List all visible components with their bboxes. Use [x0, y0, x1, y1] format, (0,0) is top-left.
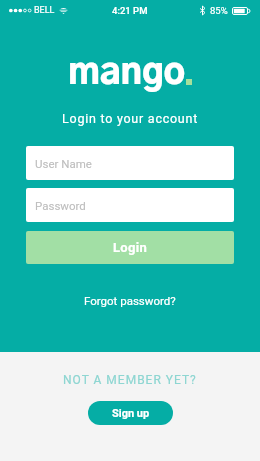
- button[interactable]: Forgot password?: [76, 290, 184, 311]
- staticText: BELL: [34, 5, 55, 16]
- button[interactable]: Login: [26, 231, 234, 264]
- staticText: NOT A MEMBER YET?: [63, 373, 197, 387]
- staticText: mango: [68, 56, 186, 92]
- button[interactable]: Sign up: [88, 401, 173, 425]
- staticText: 4:21 PM: [112, 5, 148, 16]
- staticText: Login: [113, 240, 148, 255]
- staticText: 85%: [210, 5, 228, 16]
- staticText: Password: [35, 199, 86, 212]
- staticText: Sign up: [112, 407, 150, 420]
- staticText: Forgot password?: [84, 294, 176, 307]
- button[interactable]: Password: [26, 188, 234, 222]
- staticText: Login to your account: [0, 111, 260, 126]
- button[interactable]: User Name: [26, 146, 234, 180]
- staticText: User Name: [35, 157, 92, 170]
